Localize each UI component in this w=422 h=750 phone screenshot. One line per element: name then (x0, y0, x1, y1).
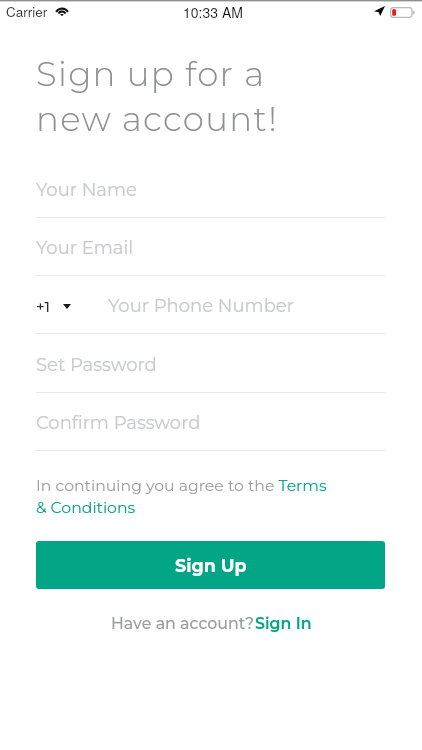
other: Wifi signal (55, 6, 69, 16)
staticText: Sign Up (175, 555, 247, 576)
button[interactable]: Your Email (36, 235, 385, 276)
staticText: Sign up for a new account! (36, 53, 278, 139)
button[interactable]: In continuing you agree to the Terms & C… (36, 476, 385, 517)
other: Location services active (374, 6, 385, 16)
staticText: +1 (36, 297, 51, 315)
other: Battery low (390, 7, 415, 18)
staticText: Your Email (36, 237, 134, 259)
staticText: Sign In (255, 614, 312, 633)
staticText: Set Password (36, 354, 157, 376)
button[interactable]: Confirm Password (36, 410, 385, 451)
button[interactable]: Country code +1, change (36, 289, 71, 323)
button[interactable]: Sign Up (36, 541, 385, 589)
staticText: Your Name (36, 179, 137, 201)
button[interactable]: Your Phone Number (108, 293, 385, 333)
button[interactable]: Your Name (36, 177, 385, 218)
staticText: Confirm Password (36, 412, 201, 434)
staticText: Your Phone Number (108, 295, 294, 317)
button[interactable]: Set Password (36, 352, 385, 393)
staticText: 10:33 AM (183, 2, 243, 22)
staticText: Carrier (6, 2, 48, 21)
staticText: Have an account? (111, 614, 255, 633)
button[interactable]: Have an account? (111, 614, 312, 633)
staticText: In continuing you agree to the Terms & C… (36, 476, 327, 517)
